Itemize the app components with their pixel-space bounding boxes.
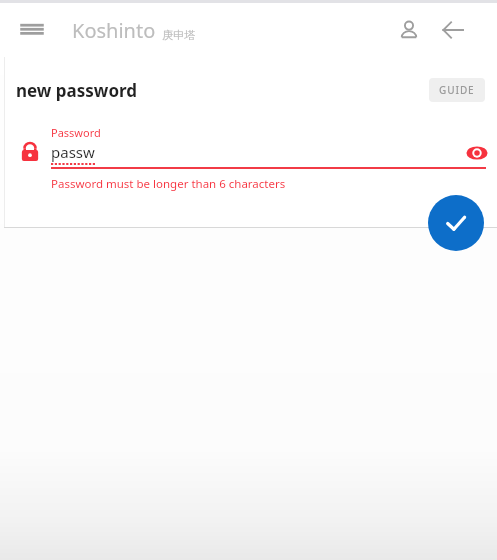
staticText: GUIDE (439, 83, 475, 97)
button[interactable]: Password locked (17, 139, 43, 165)
button[interactable]: Show password (461, 137, 493, 169)
button[interactable]: Back (431, 8, 475, 52)
button[interactable]: Confirm (428, 195, 484, 251)
staticText: Password must be longer than 6 character… (51, 176, 286, 192)
staticText: Koshinto (72, 17, 156, 44)
staticText: 庚申塔 (162, 28, 195, 42)
staticText: new password (16, 79, 138, 102)
button[interactable]: Open navigation menu (8, 6, 56, 54)
button[interactable]: Account (387, 8, 431, 52)
button[interactable]: GUIDE (429, 78, 485, 102)
button[interactable]: Koshinto (72, 17, 195, 44)
staticText: passw (51, 142, 95, 162)
staticText: Password (51, 125, 101, 140)
